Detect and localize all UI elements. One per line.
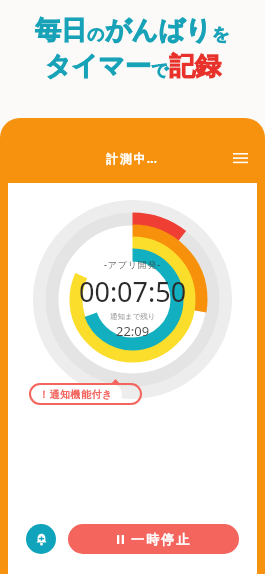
staticText: 通知まで残り [110,312,156,321]
staticText: がんばり [105,14,212,47]
staticText: で [151,60,169,81]
button[interactable]: Menu [227,145,253,171]
staticText: 00:07:50 [79,273,187,310]
staticText: -アプリ開発- [104,258,162,270]
staticText: 毎日 [35,14,87,47]
staticText: 記録 [169,50,221,83]
staticText: 一時停止 [130,531,190,547]
button[interactable]: Notification settings [26,524,56,554]
button[interactable]: ！通知機能付き [30,384,122,405]
staticText: を [212,24,230,45]
staticText: 22:09 [116,322,150,340]
button[interactable]: 一時停止 [68,524,239,554]
staticText: ！通知機能付き [39,388,113,401]
staticText: の [87,24,105,45]
staticText: タイマー [45,50,151,83]
staticText: 計測中… [106,150,159,166]
